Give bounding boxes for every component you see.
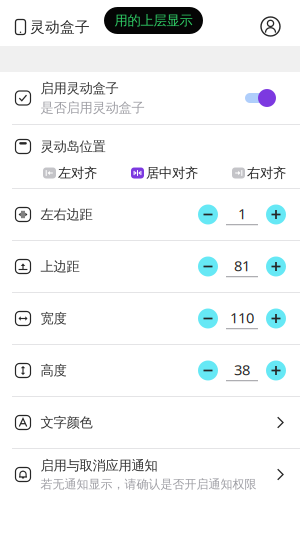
- staticText: 110: [230, 308, 254, 327]
- staticText: 左对齐: [58, 165, 97, 181]
- button[interactable]: Increase: [266, 204, 286, 224]
- button[interactable]: 启用灵动盒子: [0, 72, 300, 124]
- button[interactable]: 高度: [0, 345, 300, 396]
- staticText: 左右边距: [40, 206, 92, 223]
- button[interactable]: Increase: [266, 256, 286, 276]
- button[interactable]: Decrease: [198, 204, 218, 224]
- staticText: 是否启用灵动盒子: [40, 99, 144, 116]
- staticText: 右对齐: [247, 165, 286, 181]
- button[interactable]: Account: [260, 16, 281, 37]
- button[interactable]: Decrease: [198, 308, 218, 328]
- staticText: 灵动盒子: [30, 18, 90, 36]
- button[interactable]: 文字颜色: [0, 397, 300, 448]
- button[interactable]: 居中对齐: [131, 165, 198, 181]
- button[interactable]: Decrease: [198, 360, 218, 380]
- button[interactable]: 上边距: [0, 241, 300, 292]
- button[interactable]: Increase: [266, 308, 286, 328]
- staticText: 若无通知显示，请确认是否开启通知权限: [40, 477, 256, 491]
- button[interactable]: 宽度: [0, 293, 300, 344]
- staticText: 81: [234, 256, 250, 275]
- staticText: 文字颜色: [40, 414, 92, 431]
- staticText: 居中对齐: [146, 165, 198, 181]
- staticText: 宽度: [40, 310, 66, 327]
- staticText: 1: [238, 204, 246, 223]
- button[interactable]: 左右边距: [0, 189, 300, 240]
- button[interactable]: 启用与取消应用通知: [0, 449, 300, 500]
- staticText: 启用与取消应用通知: [40, 457, 157, 474]
- button[interactable]: Increase: [266, 360, 286, 380]
- staticText: 38: [234, 360, 250, 379]
- button[interactable]: 右对齐: [232, 165, 286, 181]
- staticText: 高度: [40, 362, 66, 379]
- staticText: 启用灵动盒子: [40, 80, 118, 96]
- button[interactable]: Decrease: [198, 256, 218, 276]
- staticText: 灵动岛位置: [40, 138, 105, 155]
- staticText: 上边距: [40, 258, 79, 275]
- button[interactable]: 左对齐: [43, 165, 97, 181]
- staticText: 用的上层显示: [114, 12, 192, 29]
